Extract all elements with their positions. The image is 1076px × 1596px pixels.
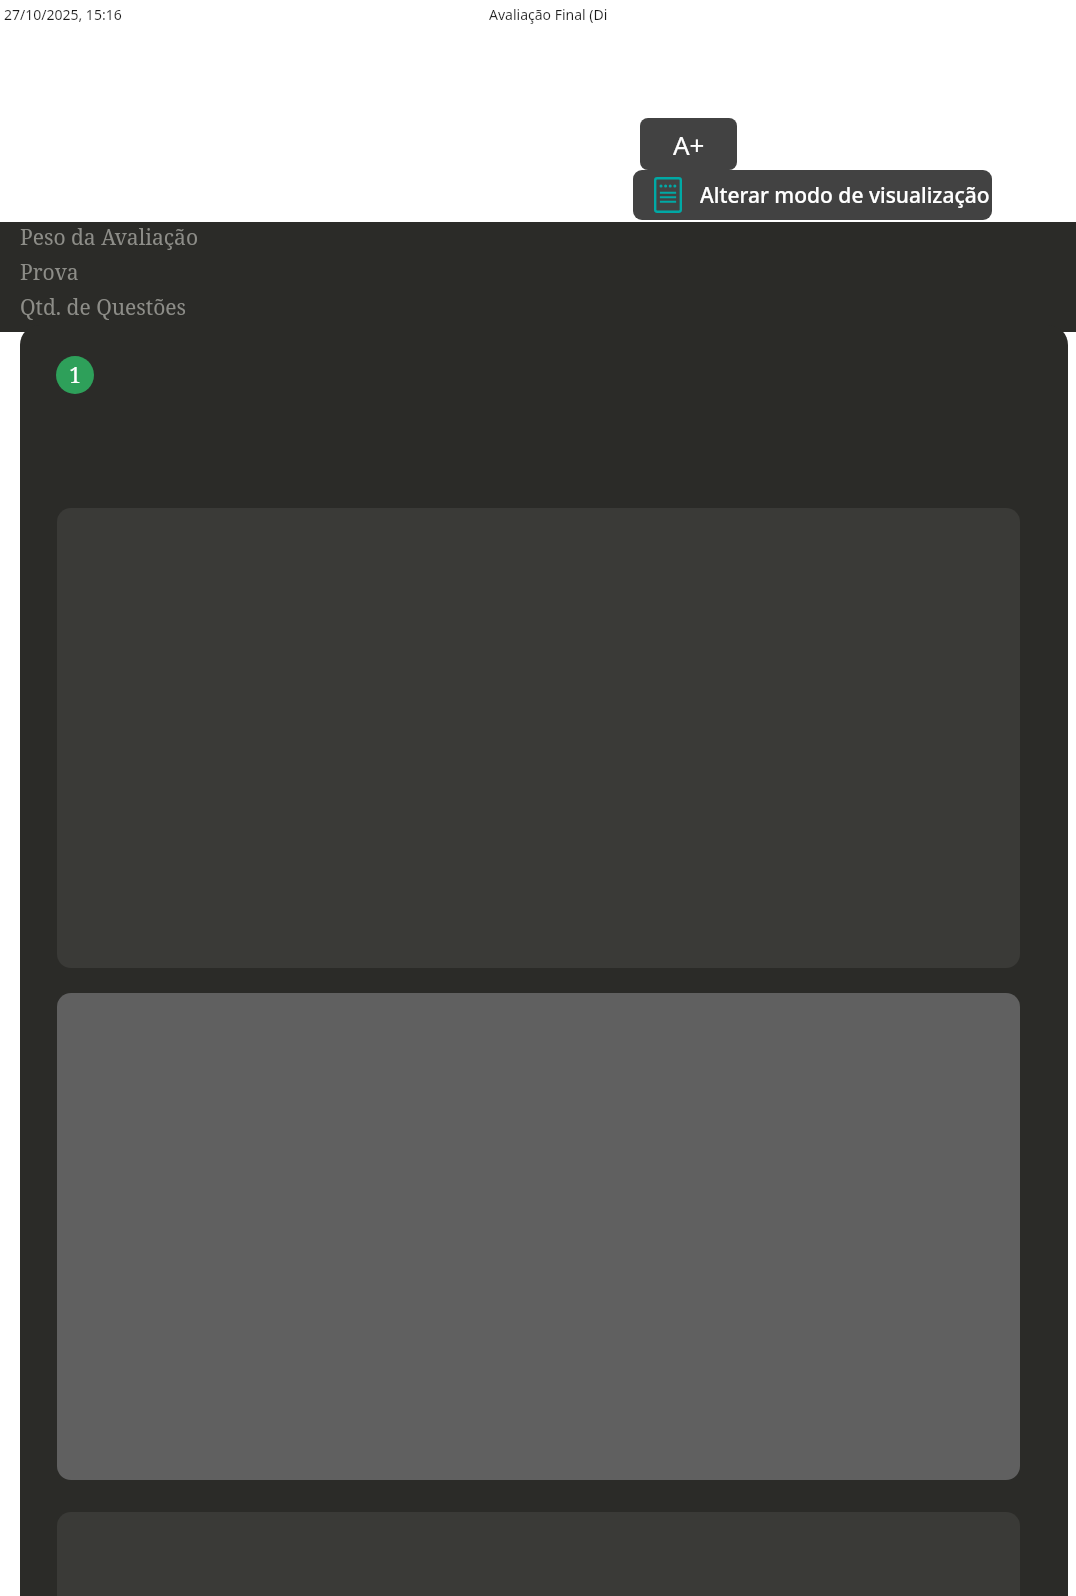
staticText: Alterar modo de visualização — [700, 181, 990, 210]
staticText: 27/10/2025, 15:16 — [4, 5, 122, 24]
button[interactable]: 1 — [56, 356, 94, 394]
button[interactable]: Alterar modo de visualização — [633, 170, 992, 220]
staticText: Avaliação Final (Di — [489, 5, 608, 24]
button[interactable]: A+ — [640, 118, 737, 170]
staticText: Qtd. de Questões — [20, 293, 187, 322]
staticText: Prova — [20, 258, 79, 287]
staticText: 1 — [69, 361, 81, 390]
staticText: A+ — [673, 127, 705, 162]
staticText: Peso da Avaliação — [20, 223, 198, 252]
